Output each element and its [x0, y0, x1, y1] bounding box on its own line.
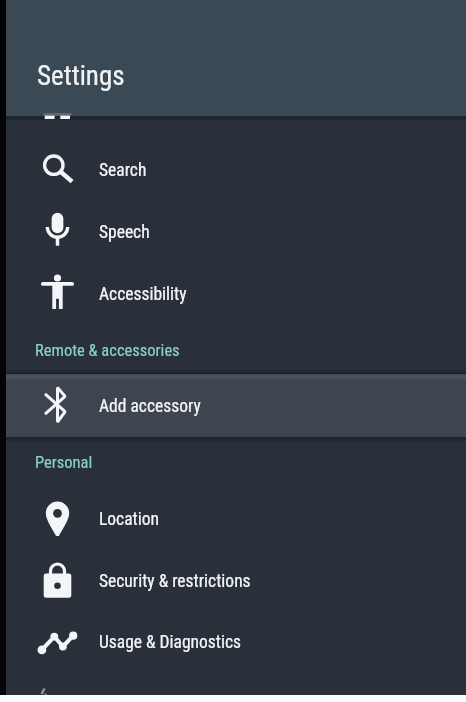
button[interactable]: Speech	[0, 199, 466, 261]
staticText: Personal	[35, 453, 93, 472]
staticText: Speech	[99, 222, 150, 243]
button[interactable]: Search	[0, 137, 466, 199]
staticText: Location	[99, 509, 160, 530]
staticText: Accessibility	[99, 284, 187, 305]
staticText: Remote & accessories	[35, 341, 180, 360]
staticText: Security & restrictions	[99, 571, 251, 592]
staticText: Add accessory	[99, 396, 201, 417]
button[interactable]: Location	[0, 488, 466, 550]
button[interactable]: Accessibility	[0, 261, 466, 323]
button[interactable]: Usage & Diagnostics	[0, 611, 466, 673]
staticText: Search	[99, 160, 147, 181]
button[interactable]: Security & restrictions	[0, 550, 466, 612]
staticText: Settings	[37, 60, 125, 92]
staticText: Usage & Diagnostics	[99, 632, 242, 653]
button[interactable]: Add accessory	[0, 373, 466, 435]
